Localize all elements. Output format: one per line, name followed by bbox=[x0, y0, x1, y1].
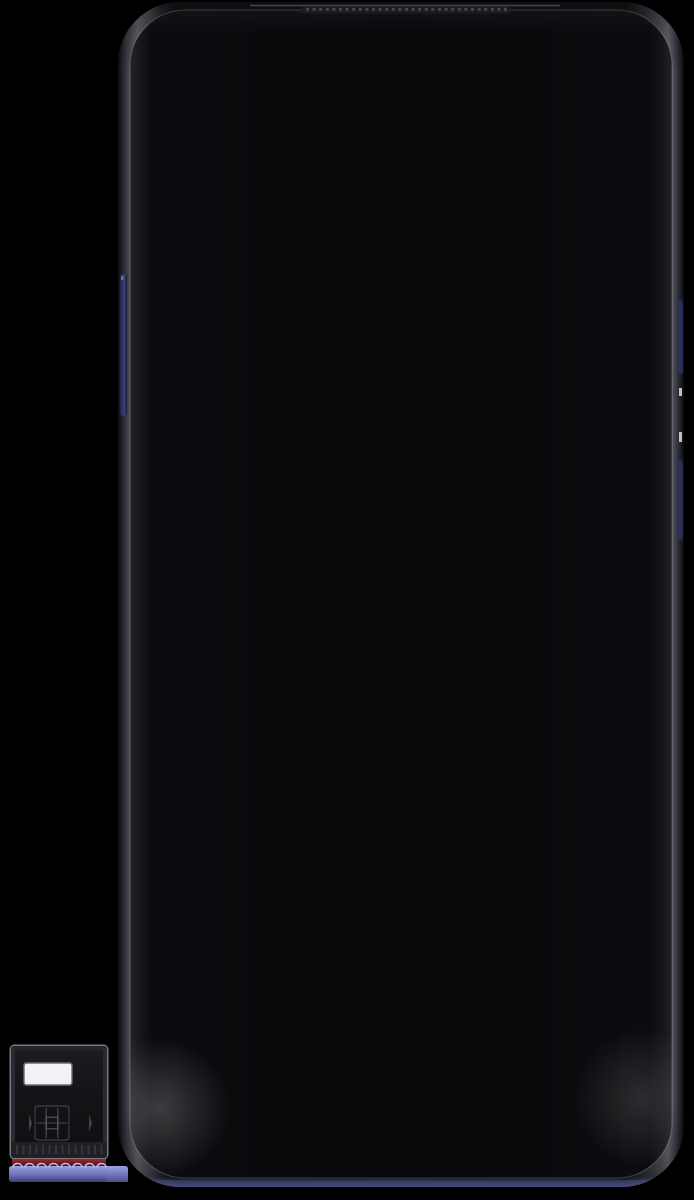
button[interactable]: Smartphone product render with SIM tray bbox=[0, 0, 694, 1200]
